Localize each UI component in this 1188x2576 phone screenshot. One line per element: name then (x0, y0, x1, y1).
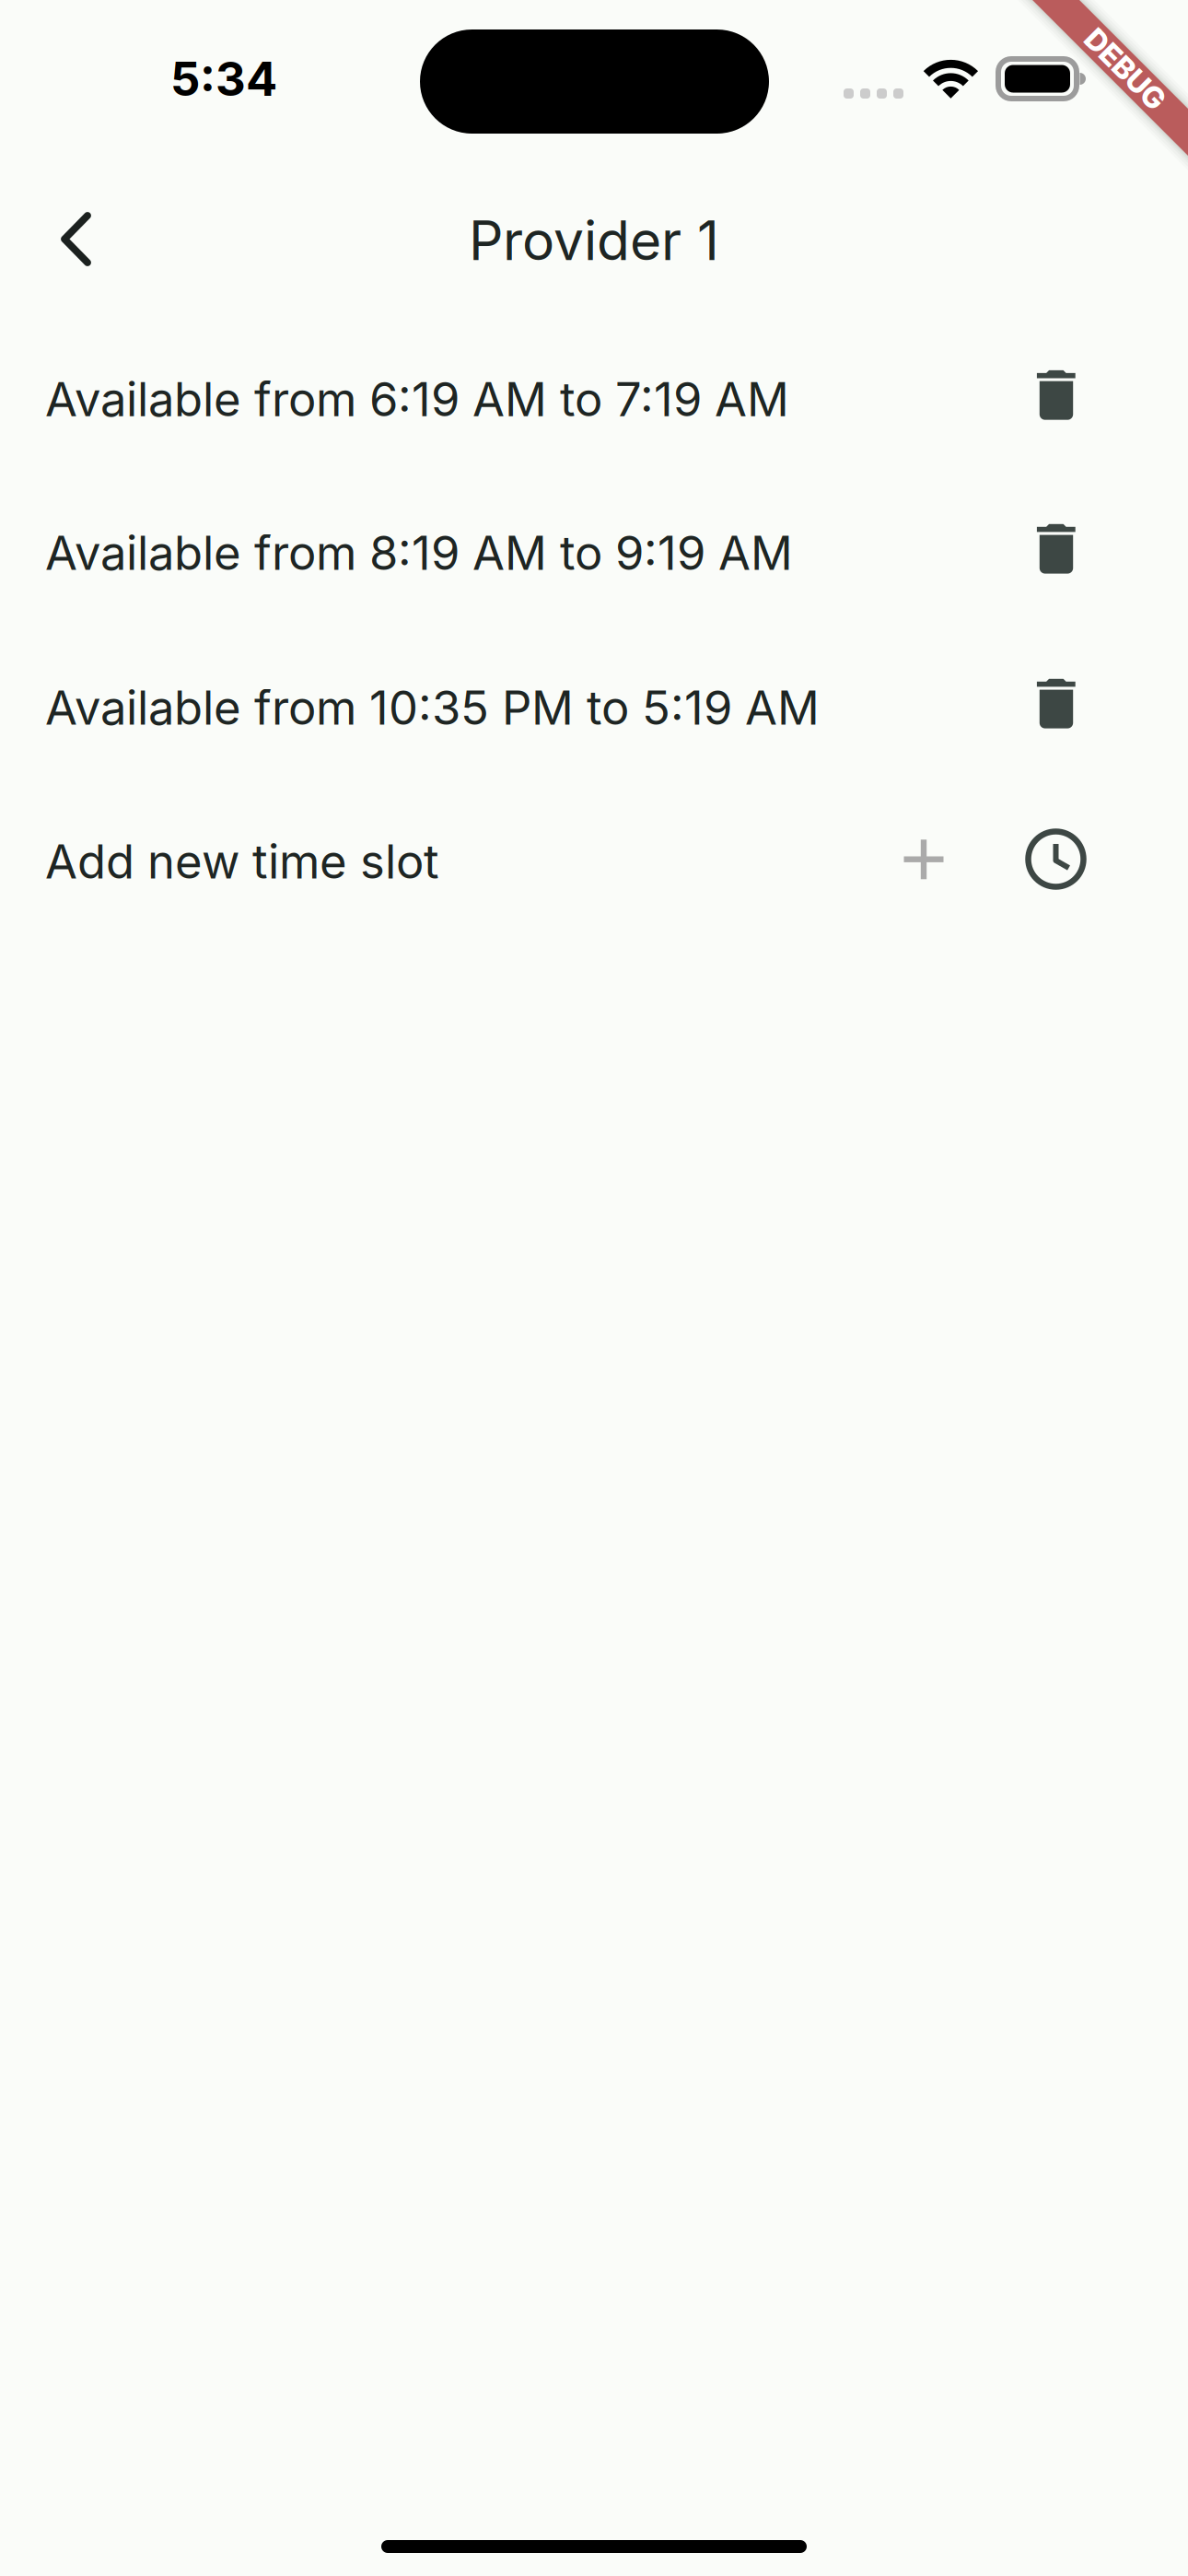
button[interactable]: Delete time slot (988, 326, 1126, 464)
staticText: 5:34 (170, 51, 277, 107)
button[interactable]: Delete time slot (988, 480, 1126, 618)
button[interactable]: Delete time slot (988, 634, 1126, 773)
staticText: Add new time slot (45, 833, 439, 890)
staticText: Available from 10:35 PM to 5:19 AM (45, 679, 820, 736)
staticText: Available from 8:19 AM to 9:19 AM (45, 525, 793, 581)
button[interactable]: Pick a time (996, 799, 1116, 919)
staticText: DEBUG (1075, 51, 1176, 87)
button[interactable]: Add time slot (864, 800, 984, 919)
staticText: Available from 6:19 AM to 7:19 AM (45, 371, 789, 427)
button[interactable]: Back (0, 176, 129, 305)
staticText: Provider 1 (469, 208, 719, 273)
